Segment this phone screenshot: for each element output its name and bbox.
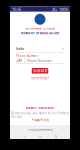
staticText: CHOOSE LANGUAGE <box>27 128 52 131</box>
staticText: MINISTRY OF AGRICULTURE <box>21 31 59 35</box>
staticText: GOVERNMENT OF INDIA <box>25 27 55 30</box>
button[interactable]: CHOOSE LANGUAGE <box>10 125 70 134</box>
staticText: v <box>62 46 64 51</box>
staticText: +91 <box>16 58 22 63</box>
staticText: o <box>39 134 41 139</box>
staticText: Phone Number <box>26 58 52 63</box>
staticText: India <box>16 46 24 51</box>
staticText: need help? <box>31 77 48 80</box>
staticText: 10:35 <box>12 6 21 12</box>
staticText: [] <box>54 134 56 139</box>
staticText: Privacy Policy <box>31 118 48 122</box>
staticText: Phone Number <box>16 54 38 58</box>
staticText: 4G 100% <box>52 6 68 12</box>
staticText: ALREADY REGISTERED? <box>25 106 54 109</box>
button[interactable]: SUBMIT <box>32 68 48 74</box>
staticText: < <box>23 134 25 139</box>
button[interactable]: need help? <box>31 77 48 80</box>
staticText: SUBMIT <box>32 68 47 73</box>
staticText: By continuing, you agree to our Terms of… <box>11 111 69 118</box>
